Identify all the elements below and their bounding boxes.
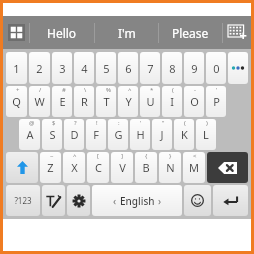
staticText: E [59, 94, 66, 109]
staticText: 1 [13, 61, 20, 76]
button[interactable]: T [96, 86, 116, 117]
staticText: 6 [125, 61, 132, 76]
staticText: ] [121, 152, 123, 160]
button[interactable]: Enter [213, 185, 248, 216]
staticText: ' [140, 119, 142, 127]
staticText: O [190, 94, 199, 109]
staticText: Z [47, 160, 54, 175]
button[interactable]: 4 [74, 52, 94, 84]
staticText: % [106, 86, 111, 94]
staticText: * [150, 86, 154, 94]
staticText: ( [172, 86, 174, 94]
button[interactable]: A [19, 119, 40, 150]
staticText: < [193, 152, 197, 160]
staticText: / [39, 86, 42, 94]
button[interactable]: Emoji [184, 185, 211, 216]
staticText: 2 [36, 61, 43, 76]
button[interactable]: G [108, 119, 128, 150]
button[interactable]: Q [6, 86, 27, 117]
button[interactable]: D [64, 119, 84, 150]
button[interactable]: U [140, 86, 160, 117]
staticText: N [166, 160, 175, 175]
button[interactable]: 8 [162, 52, 182, 84]
button[interactable]: M [183, 152, 205, 183]
staticText: Q [12, 94, 21, 109]
staticText: F [93, 127, 99, 142]
staticText: # [62, 86, 66, 94]
staticText: ! [96, 119, 98, 127]
staticText: " [162, 119, 165, 127]
staticText: ?123 [14, 195, 32, 206]
staticText: S [49, 127, 56, 142]
staticText: 4 [81, 61, 88, 76]
staticText: 8 [169, 61, 176, 76]
staticText: ( [184, 119, 186, 127]
staticText: ? [74, 119, 77, 127]
button[interactable]: I [162, 86, 182, 117]
staticText: 7 [147, 61, 154, 76]
staticText: ' [216, 86, 218, 94]
staticText: 9 [191, 61, 198, 76]
button[interactable]: More [228, 52, 248, 84]
button[interactable]: 0 [206, 52, 226, 84]
button[interactable]: V [111, 152, 133, 183]
button[interactable]: ‹ [92, 185, 182, 216]
staticText: G [114, 127, 123, 142]
staticText: ‹ [113, 194, 117, 208]
staticText: L [203, 127, 209, 142]
button[interactable]: Add keyboard [223, 16, 251, 49]
button[interactable]: Handwriting [42, 185, 65, 216]
button[interactable]: 5 [96, 52, 116, 84]
button[interactable]: Keyboard modes [3, 16, 29, 49]
staticText: 5 [103, 61, 110, 76]
button[interactable]: Please [159, 16, 222, 49]
button[interactable]: ?123 [6, 185, 40, 216]
button[interactable]: H [130, 119, 150, 150]
staticText: } [169, 152, 172, 160]
button[interactable]: 2 [29, 52, 50, 84]
button[interactable]: Z [40, 152, 61, 183]
button[interactable]: L [196, 119, 216, 150]
button[interactable]: S [42, 119, 62, 150]
staticText: X [71, 160, 78, 175]
staticText: D [70, 127, 79, 142]
staticText: 0 [213, 61, 220, 76]
button[interactable]: Backspace [207, 152, 248, 183]
button[interactable]: R [74, 86, 94, 117]
staticText: J [160, 127, 164, 142]
button[interactable]: W [29, 86, 50, 117]
staticText: M [189, 160, 199, 175]
staticText: Y [125, 94, 132, 109]
staticText: I'm [118, 25, 136, 41]
button[interactable]: 3 [52, 52, 72, 84]
staticText: 3 [59, 61, 66, 76]
button[interactable]: K [174, 119, 194, 150]
button[interactable]: Settings [67, 185, 90, 216]
button[interactable]: 9 [184, 52, 204, 84]
staticText: ^ [73, 152, 77, 160]
button[interactable]: Shift [6, 152, 38, 183]
staticText: - [194, 86, 196, 94]
staticText: B [142, 160, 150, 175]
button[interactable]: 6 [118, 52, 138, 84]
button[interactable]: E [52, 86, 72, 117]
button[interactable]: 1 [6, 52, 27, 84]
button[interactable]: X [63, 152, 85, 183]
button[interactable]: I'm [95, 16, 158, 49]
staticText: › [158, 194, 162, 208]
staticText: H [136, 127, 145, 142]
button[interactable]: 7 [140, 52, 160, 84]
staticText: R [81, 94, 88, 109]
staticText: + [16, 86, 20, 94]
button[interactable]: O [184, 86, 204, 117]
staticText: C [95, 160, 102, 175]
button[interactable]: Y [118, 86, 138, 117]
button[interactable]: Hello [30, 16, 94, 49]
button[interactable]: P [206, 86, 226, 117]
staticText: ^ [128, 86, 132, 94]
button[interactable]: C [87, 152, 109, 183]
button[interactable]: N [159, 152, 181, 183]
button[interactable]: F [86, 119, 106, 150]
button[interactable]: B [135, 152, 157, 183]
button[interactable]: J [152, 119, 172, 150]
